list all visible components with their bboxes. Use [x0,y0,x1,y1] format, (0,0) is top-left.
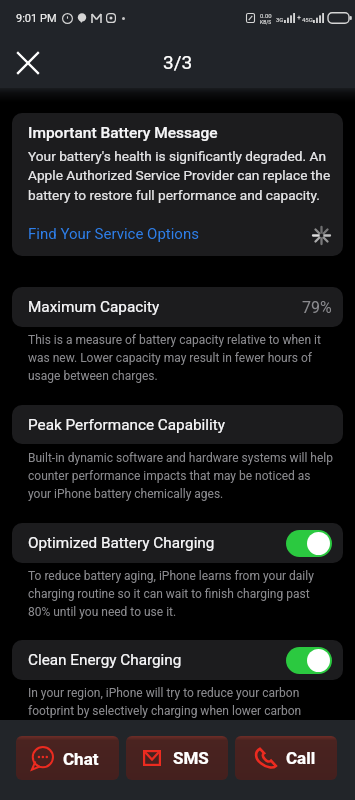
staticText: Maximum Capacity [28,298,160,316]
button[interactable]: SMS [126,736,228,780]
staticText: Your battery's health is significantly d… [28,148,338,204]
staticText: 3/3 [163,51,193,73]
button[interactable]: Close [6,41,50,85]
button[interactable]: Peak Performance Capability [12,405,343,444]
staticText: 3G [276,16,284,23]
staticText: This is a measure of battery capacity re… [28,333,333,383]
staticText: Important Battery Message [28,124,218,142]
button[interactable]: Clean Energy Charging [12,640,343,680]
staticText: To reduce battery aging, iPhone learns f… [28,569,333,619]
staticText: Optimized Battery Charging [28,534,215,552]
staticText: KB/S [260,19,272,25]
staticText: Built-in dynamic software and hardware s… [28,451,333,501]
staticText: 79% [302,298,332,317]
staticText: 9:01 PM [16,12,57,25]
button[interactable]: Maximum Capacity [12,287,343,327]
button[interactable]: Call [235,736,337,780]
staticText: 0.00 [260,12,272,19]
staticText: Clean Energy Charging [28,651,182,669]
button[interactable]: Find Your Service Options [28,225,199,243]
staticText: Peak Performance Capability [28,416,225,434]
staticText: Chat [63,749,99,769]
staticText: SMS [173,748,209,768]
staticText: Call [286,748,316,768]
staticText: + [297,14,301,22]
button[interactable]: Chat [16,736,119,780]
staticText: In your region, iPhone will try to reduc… [28,686,333,718]
button[interactable]: Optimized Battery Charging [12,523,343,563]
staticText: 45G [302,16,313,23]
